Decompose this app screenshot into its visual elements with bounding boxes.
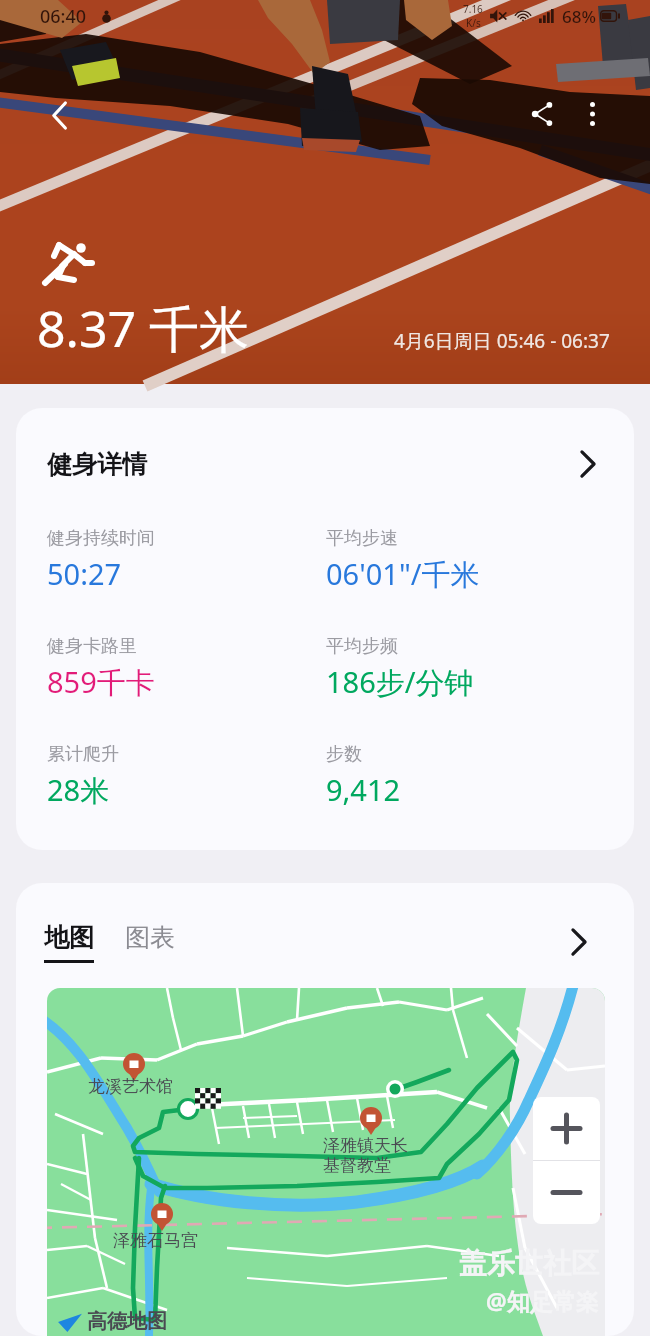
button[interactable]: More options [569, 91, 615, 137]
staticText: 28米 [47, 770, 110, 810]
button[interactable]: 地图 [44, 922, 94, 963]
staticText: 50:27 [47, 554, 122, 593]
staticText: 健身持续时间 [47, 527, 155, 550]
staticText: 186步/分钟 [326, 662, 474, 702]
staticText: 步数 [326, 743, 362, 766]
staticText: 68% [562, 5, 596, 28]
staticText: 高德地图 [87, 1309, 167, 1334]
staticText: 平均步频 [326, 635, 398, 658]
button[interactable]: 图表 [125, 922, 175, 963]
staticText: 泽雅镇天长 基督教堂 [323, 1135, 408, 1176]
button[interactable]: Zoom out [533, 1161, 600, 1224]
button[interactable]: Zoom in [533, 1097, 600, 1160]
staticText: 图表 [125, 922, 175, 953]
staticText: 7.16 [463, 2, 483, 16]
staticText: 地图 [44, 922, 94, 953]
staticText: 平均步速 [326, 527, 398, 550]
staticText: 盖乐世社区 [459, 1246, 599, 1281]
button[interactable]: Open map [562, 925, 596, 959]
staticText: 06'01"/千米 [326, 554, 480, 594]
staticText: 累计爬升 [47, 743, 119, 766]
button[interactable]: 健身详情 [16, 408, 634, 520]
staticText: 8.37 千米 [37, 294, 250, 362]
staticText: 859千卡 [47, 662, 155, 702]
staticText: @知足常楽 [486, 1285, 599, 1316]
staticText: 9,412 [326, 770, 401, 809]
staticText: 06:40 [40, 4, 87, 29]
staticText: 泽雅石马宫 [113, 1230, 198, 1251]
staticText: 健身详情 [47, 449, 147, 480]
button[interactable]: Back [36, 92, 82, 138]
staticText: K/s [466, 16, 481, 30]
staticText: 龙溪艺术馆 [88, 1076, 173, 1097]
button[interactable]: Share [519, 91, 565, 137]
staticText: 健身卡路里 [47, 635, 137, 658]
staticText: 4月6日周日 05:46 - 06:37 [394, 328, 610, 354]
